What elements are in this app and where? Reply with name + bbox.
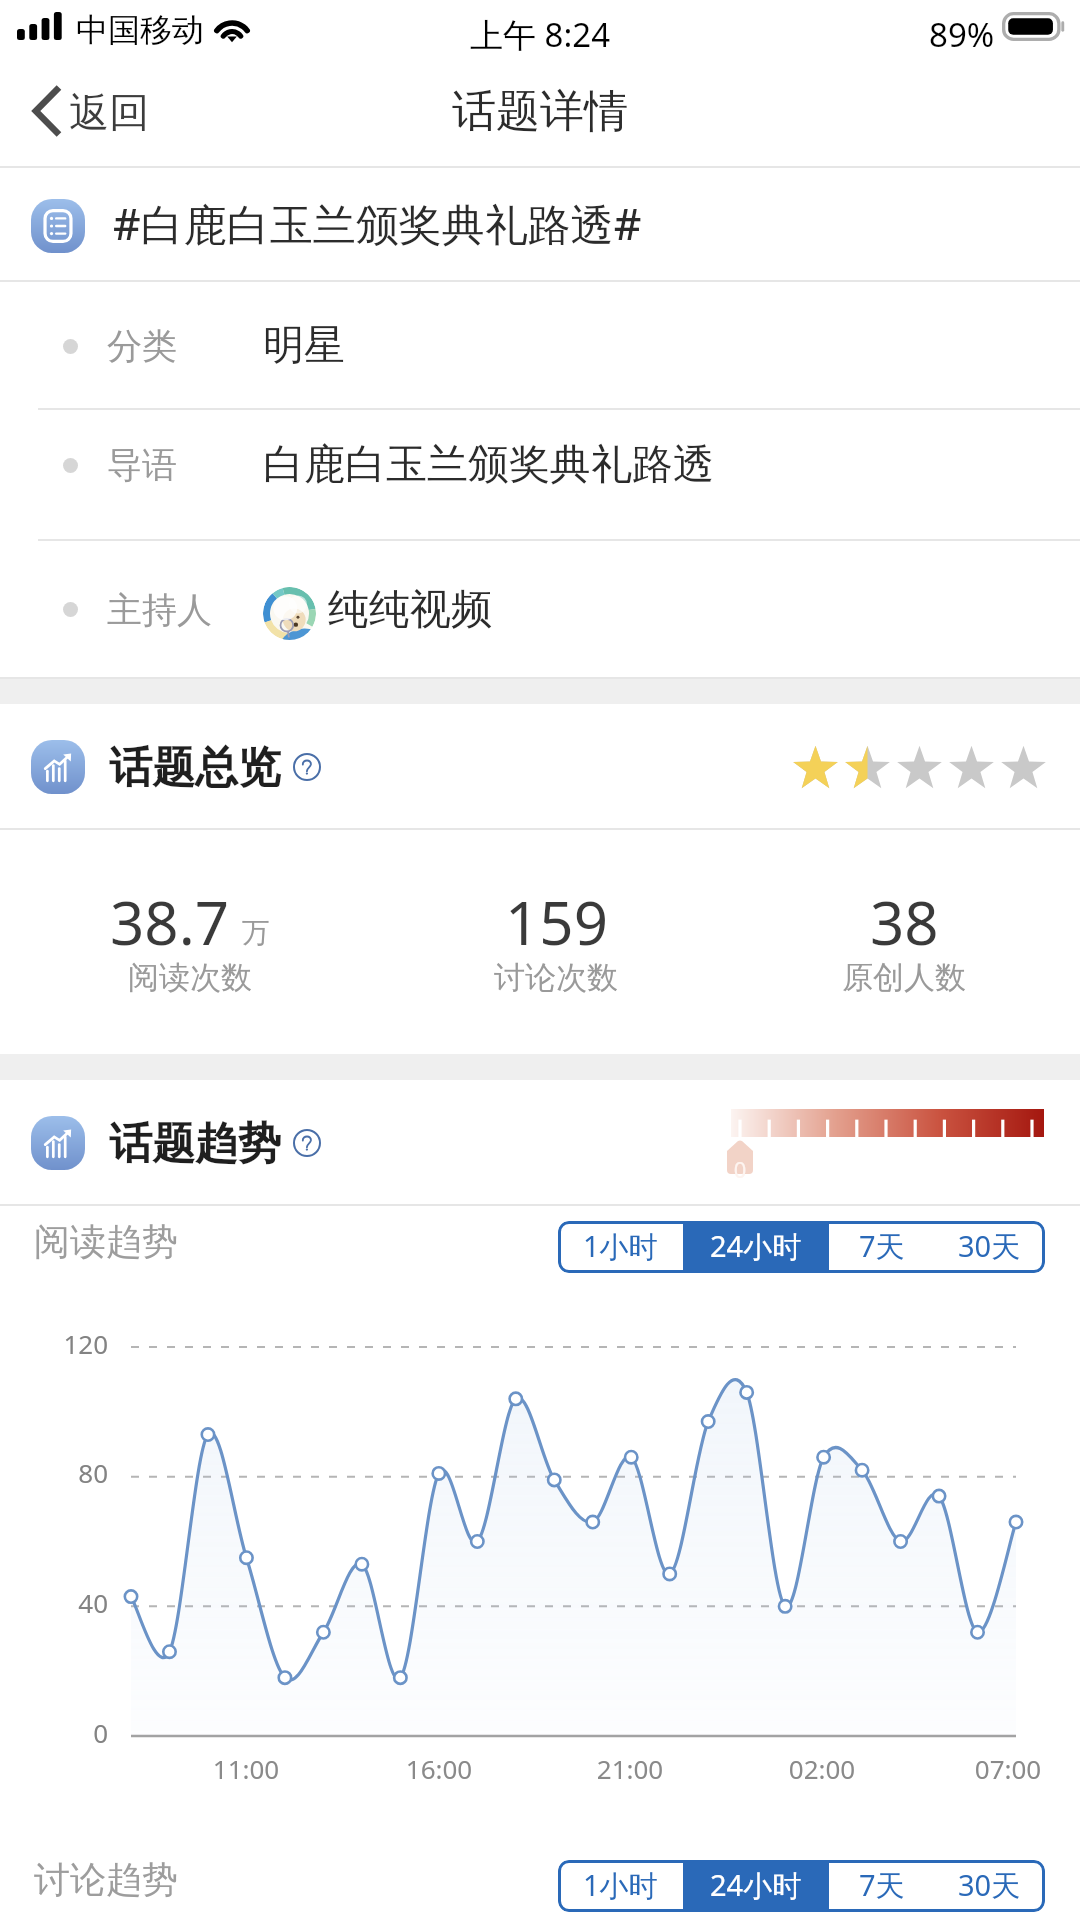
staticText: 导语 [107, 443, 177, 487]
button[interactable]: 返回 [0, 62, 177, 168]
button[interactable]: 7天 [829, 1221, 934, 1273]
staticText: 7天 [859, 1865, 905, 1905]
staticText: 11:00 [146, 1751, 346, 1786]
button[interactable]: 7天 [829, 1860, 934, 1912]
staticText: 89% [929, 12, 995, 57]
staticText: #白鹿白玉兰颁奖典礼路透# [113, 194, 642, 253]
staticText: 万 [242, 915, 270, 950]
staticText: 阅读趋势 [34, 1219, 178, 1264]
button[interactable]: 评分 1.5 星 [792, 744, 1047, 791]
staticText: 明星 [263, 320, 345, 372]
staticText: 0 [0, 1715, 108, 1750]
button[interactable]: 主持人 [0, 541, 1080, 677]
staticText: 80 [0, 1455, 108, 1490]
button[interactable]: 热度指数 [726, 1080, 1056, 1206]
button[interactable]: 24小时 [683, 1860, 829, 1912]
staticText: 讨论次数 [494, 958, 618, 997]
staticText: 中国移动 [76, 10, 204, 50]
staticText: 分类 [107, 324, 177, 368]
button[interactable]: 1小时 [558, 1221, 683, 1273]
staticText: 纯纯视频 [328, 584, 492, 636]
staticText: 话题总览 [109, 741, 281, 795]
staticText: 主持人 [107, 588, 212, 632]
staticText: 38.7 [110, 881, 230, 963]
button[interactable]: 1小时 [558, 1860, 683, 1912]
staticText: 话题详情 [452, 84, 628, 139]
staticText: 原创人数 [842, 958, 966, 997]
staticText: 07:00 [908, 1751, 1080, 1786]
button[interactable]: 分类 [0, 282, 1080, 410]
staticText: 阅读次数 [128, 958, 252, 997]
staticText: 120 [0, 1326, 108, 1361]
staticText: 返回 [69, 87, 149, 137]
staticText: 白鹿白玉兰颁奖典礼路透 [263, 439, 714, 491]
button[interactable]: 导语 [0, 410, 1080, 519]
button[interactable]: 38.7 [0, 830, 390, 1054]
button[interactable]: 24小时 [683, 1221, 829, 1273]
staticText: 1小时 [583, 1865, 658, 1905]
button[interactable]: 30天 [934, 1221, 1045, 1273]
button[interactable]: 38 [704, 830, 1080, 1054]
button[interactable]: 说明 [293, 753, 321, 781]
staticText: 24小时 [710, 1865, 802, 1905]
staticText: 16:00 [339, 1751, 539, 1786]
button[interactable]: 说明 [293, 1129, 321, 1157]
button[interactable]: 159 [356, 830, 756, 1054]
staticText: 02:00 [722, 1751, 922, 1786]
staticText: 1小时 [583, 1226, 658, 1266]
button[interactable]: 30天 [934, 1860, 1045, 1912]
staticText: 0 [727, 1154, 753, 1184]
staticText: 40 [0, 1585, 108, 1620]
staticText: 话题趋势 [109, 1117, 281, 1171]
staticText: 21:00 [530, 1751, 730, 1786]
staticText: 30天 [958, 1226, 1021, 1266]
staticText: 讨论趋势 [34, 1857, 178, 1902]
staticText: 上午 8:24 [0, 12, 1080, 57]
button[interactable]: #白鹿白玉兰颁奖典礼路透# [0, 168, 1080, 282]
staticText: 159 [505, 881, 608, 963]
staticText: 38 [870, 881, 939, 963]
staticText: 30天 [958, 1865, 1021, 1905]
staticText: 24小时 [710, 1226, 802, 1266]
staticText: 7天 [859, 1226, 905, 1266]
